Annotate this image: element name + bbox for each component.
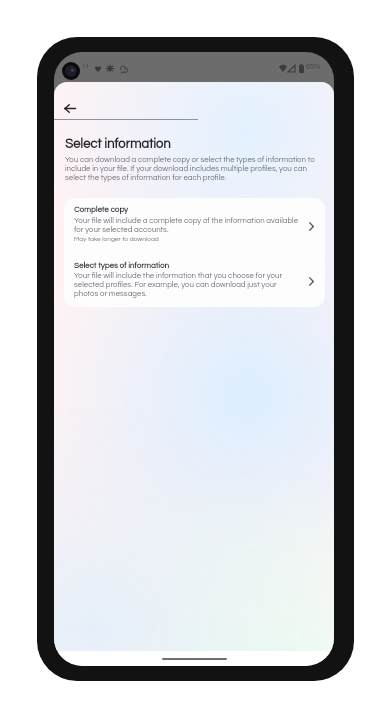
staticText: You can download a complete copy or sele… (65, 156, 319, 182)
staticText: 14 (82, 63, 89, 69)
staticText: Your file will include a complete copy o… (74, 217, 300, 234)
staticText: Your file will include the information t… (74, 272, 300, 298)
button[interactable]: Select types of information (64, 254, 325, 307)
staticText: May take longer to download (74, 236, 159, 243)
button[interactable]: Complete copy (64, 198, 325, 254)
staticText: Complete copy (74, 205, 129, 213)
staticText: 65% (306, 63, 321, 71)
staticText: Select types of information (74, 261, 169, 269)
button[interactable]: Back (57, 95, 83, 121)
staticText: Select information (65, 137, 171, 150)
